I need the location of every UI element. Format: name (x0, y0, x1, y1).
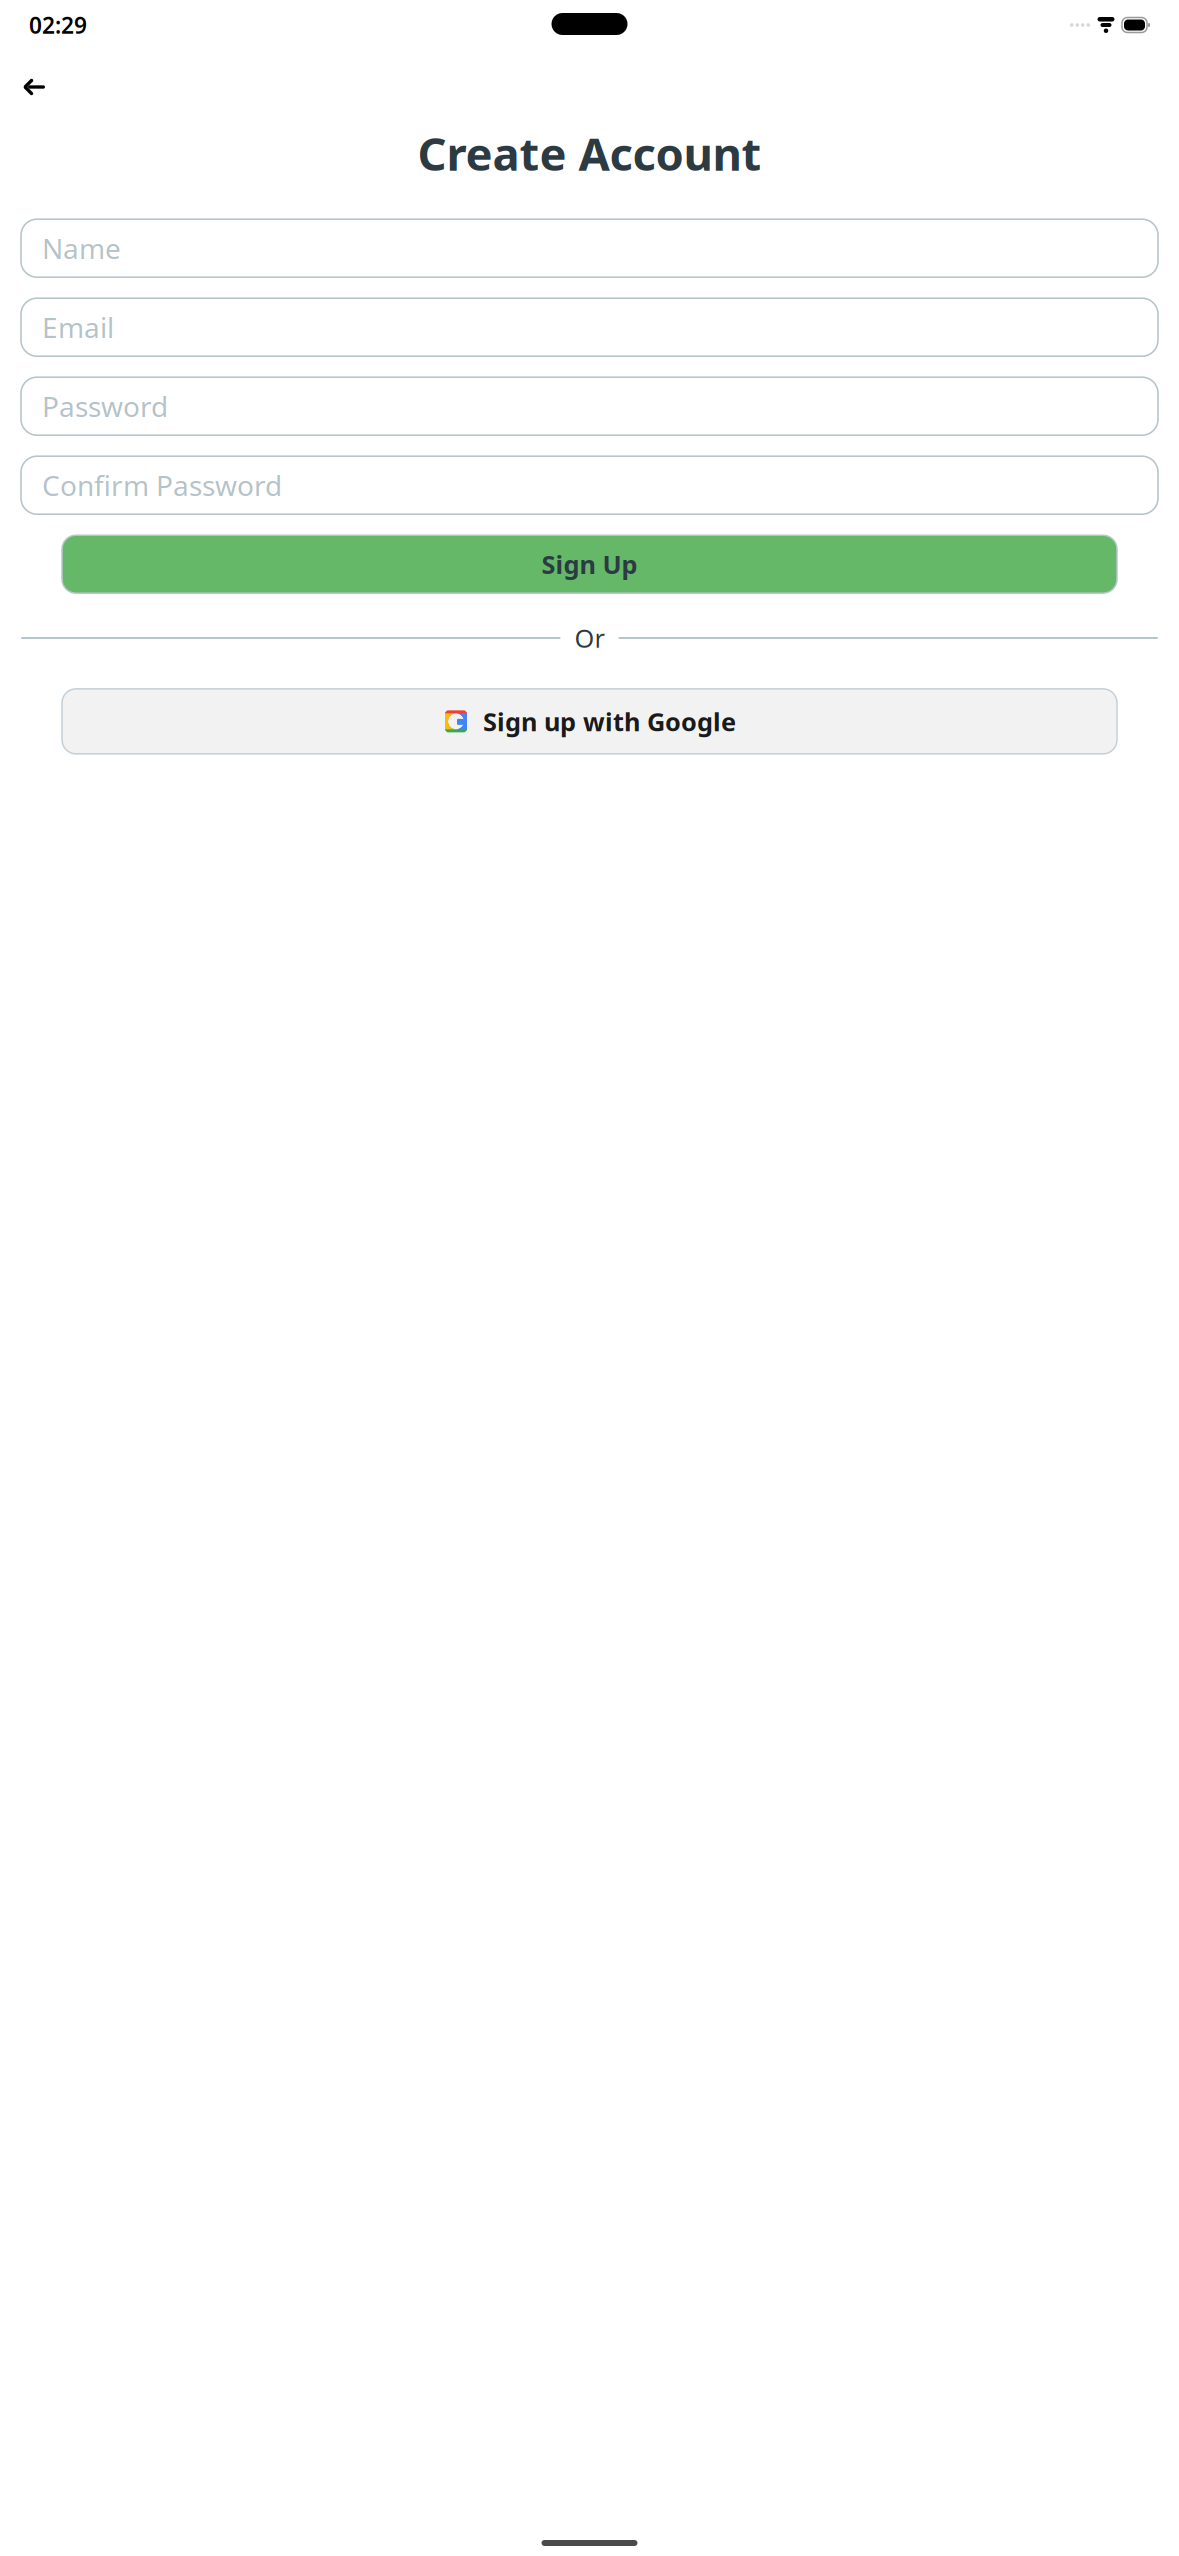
staticText: 02:29 (29, 10, 87, 40)
button[interactable]: Sign Up (62, 535, 1117, 593)
staticText: Confirm Password (42, 467, 282, 504)
staticText: Or (574, 621, 604, 655)
button[interactable]: Sign up with Google (62, 689, 1117, 754)
staticText: Create Account (417, 123, 761, 183)
staticText: Name (42, 230, 121, 267)
staticText: Sign up with Google (483, 704, 736, 738)
staticText: Sign Up (541, 547, 637, 581)
staticText: Password (42, 388, 168, 425)
staticText: Email (42, 309, 114, 346)
button[interactable]: Back (12, 65, 56, 109)
